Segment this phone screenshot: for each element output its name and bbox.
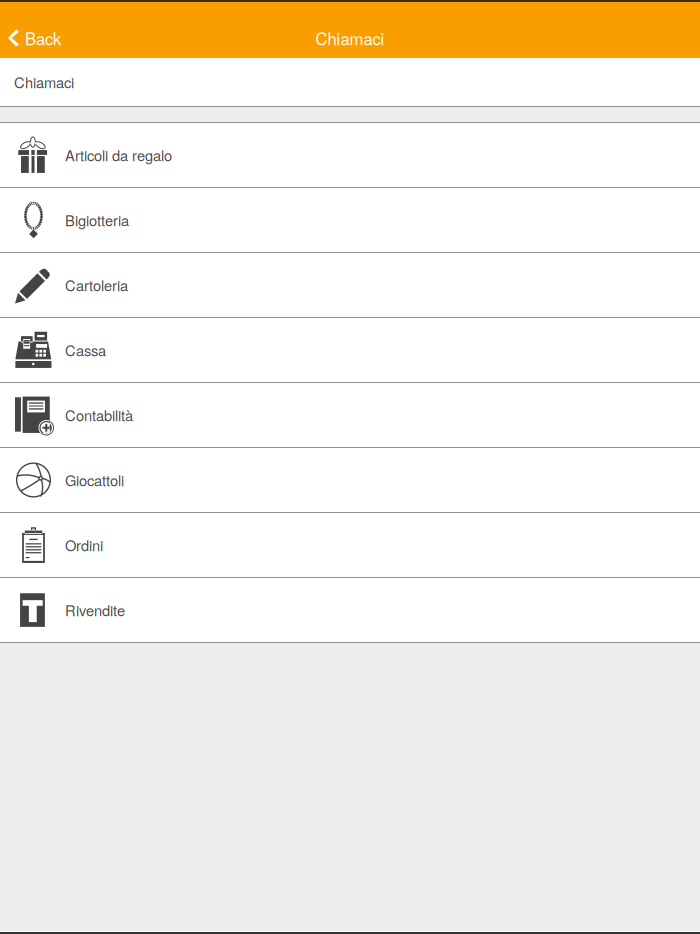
staticText: Rivendite (65, 599, 125, 620)
staticText: Ordini (65, 534, 103, 555)
button[interactable]: Cassa (0, 318, 700, 383)
button[interactable]: Cartoleria (0, 253, 700, 318)
staticText: Chiamaci (315, 26, 384, 50)
staticText: Chiamaci (14, 71, 74, 92)
button[interactable]: Back (0, 15, 61, 61)
button[interactable]: Giocattoli (0, 448, 700, 513)
button[interactable]: Ordini (0, 513, 700, 578)
button[interactable]: Rivendite (0, 578, 700, 643)
staticText: Cartoleria (65, 274, 128, 295)
button[interactable]: Articoli da regalo (0, 123, 700, 188)
button[interactable]: Bigiotteria (0, 188, 700, 253)
staticText: Giocattoli (65, 469, 124, 490)
button[interactable]: Contabilità (0, 383, 700, 448)
staticText: Cassa (65, 339, 106, 360)
staticText: Contabilità (65, 404, 133, 425)
staticText: Bigiotteria (65, 209, 129, 230)
staticText: Back (25, 26, 61, 50)
staticText: Articoli da regalo (65, 144, 172, 165)
